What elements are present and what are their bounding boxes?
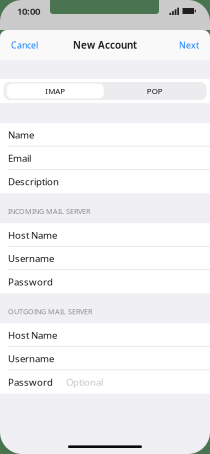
staticText: Description — [8, 175, 59, 188]
staticText: Username — [8, 252, 54, 265]
button[interactable]: Username — [0, 347, 210, 370]
button[interactable]: Email — [0, 146, 210, 170]
staticText: Cancel — [11, 39, 38, 51]
button[interactable]: Password — [0, 270, 210, 293]
staticText: Host Name — [8, 329, 57, 342]
button[interactable]: Host Name — [0, 323, 210, 347]
button[interactable]: IMAP — [5, 82, 105, 100]
staticText: Next — [179, 39, 199, 51]
staticText: Password — [8, 275, 53, 288]
button[interactable]: Description — [0, 170, 210, 193]
staticText: New Account — [73, 38, 137, 52]
button[interactable]: Next — [173, 30, 210, 60]
staticText: Email — [8, 152, 31, 165]
staticText: INCOMING MAIL SERVER — [8, 206, 90, 216]
button[interactable]: POP — [105, 82, 204, 100]
button[interactable]: Host Name — [0, 223, 210, 247]
button[interactable]: Username — [0, 247, 210, 270]
button[interactable]: Cancel — [0, 30, 44, 60]
staticText: Username — [8, 352, 54, 365]
staticText: Host Name — [8, 228, 57, 241]
button[interactable]: Name — [0, 123, 210, 146]
staticText: OUTGOING MAIL SERVER — [8, 307, 92, 316]
staticText: Password — [8, 375, 53, 388]
button[interactable]: Password — [0, 370, 210, 394]
staticText: 10:00 — [17, 4, 40, 18]
staticText: POP — [147, 86, 163, 96]
staticText: Name — [8, 128, 34, 141]
staticText: IMAP — [45, 86, 65, 96]
staticText: Optional — [66, 375, 103, 388]
